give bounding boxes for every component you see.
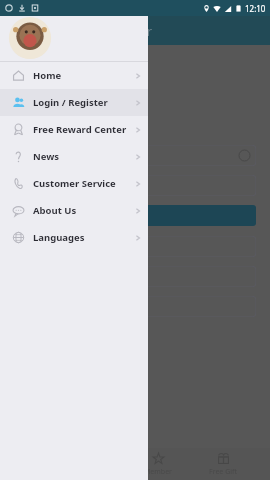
staticText: Login Card bbox=[14, 81, 105, 104]
button[interactable] bbox=[14, 205, 256, 226]
button[interactable]: Free Gift bbox=[205, 452, 241, 477]
button[interactable] bbox=[14, 236, 256, 257]
button[interactable]: Customer Service bbox=[0, 170, 148, 197]
button[interactable]: Login / Register bbox=[0, 89, 148, 116]
staticText: Login / Register bbox=[33, 96, 108, 109]
button[interactable]: Confirm Password bbox=[14, 296, 256, 317]
staticText: News bbox=[33, 150, 60, 163]
button[interactable]: Languages bbox=[0, 224, 148, 251]
button[interactable]: About Us bbox=[0, 197, 148, 224]
staticText: Member bbox=[144, 467, 172, 477]
staticText: Languages bbox=[33, 231, 85, 244]
staticText: Customer Service bbox=[33, 177, 116, 190]
button[interactable]: Profile avatar bbox=[8, 16, 52, 60]
staticText: Login Card bbox=[14, 122, 70, 137]
button[interactable]: Member bbox=[140, 452, 176, 477]
staticText: About Us bbox=[33, 204, 77, 217]
button[interactable] bbox=[14, 175, 256, 196]
staticText: 12:10 bbox=[245, 3, 266, 14]
staticText: Home bbox=[33, 69, 62, 82]
staticText: Login / Register bbox=[56, 22, 153, 40]
button[interactable]: Home bbox=[0, 62, 148, 89]
staticText: Free Reward Center bbox=[33, 123, 127, 136]
button[interactable]: Free Reward Center bbox=[0, 116, 148, 143]
button[interactable]: News bbox=[0, 143, 148, 170]
button[interactable]: Password bbox=[14, 266, 256, 287]
button[interactable] bbox=[14, 145, 256, 166]
